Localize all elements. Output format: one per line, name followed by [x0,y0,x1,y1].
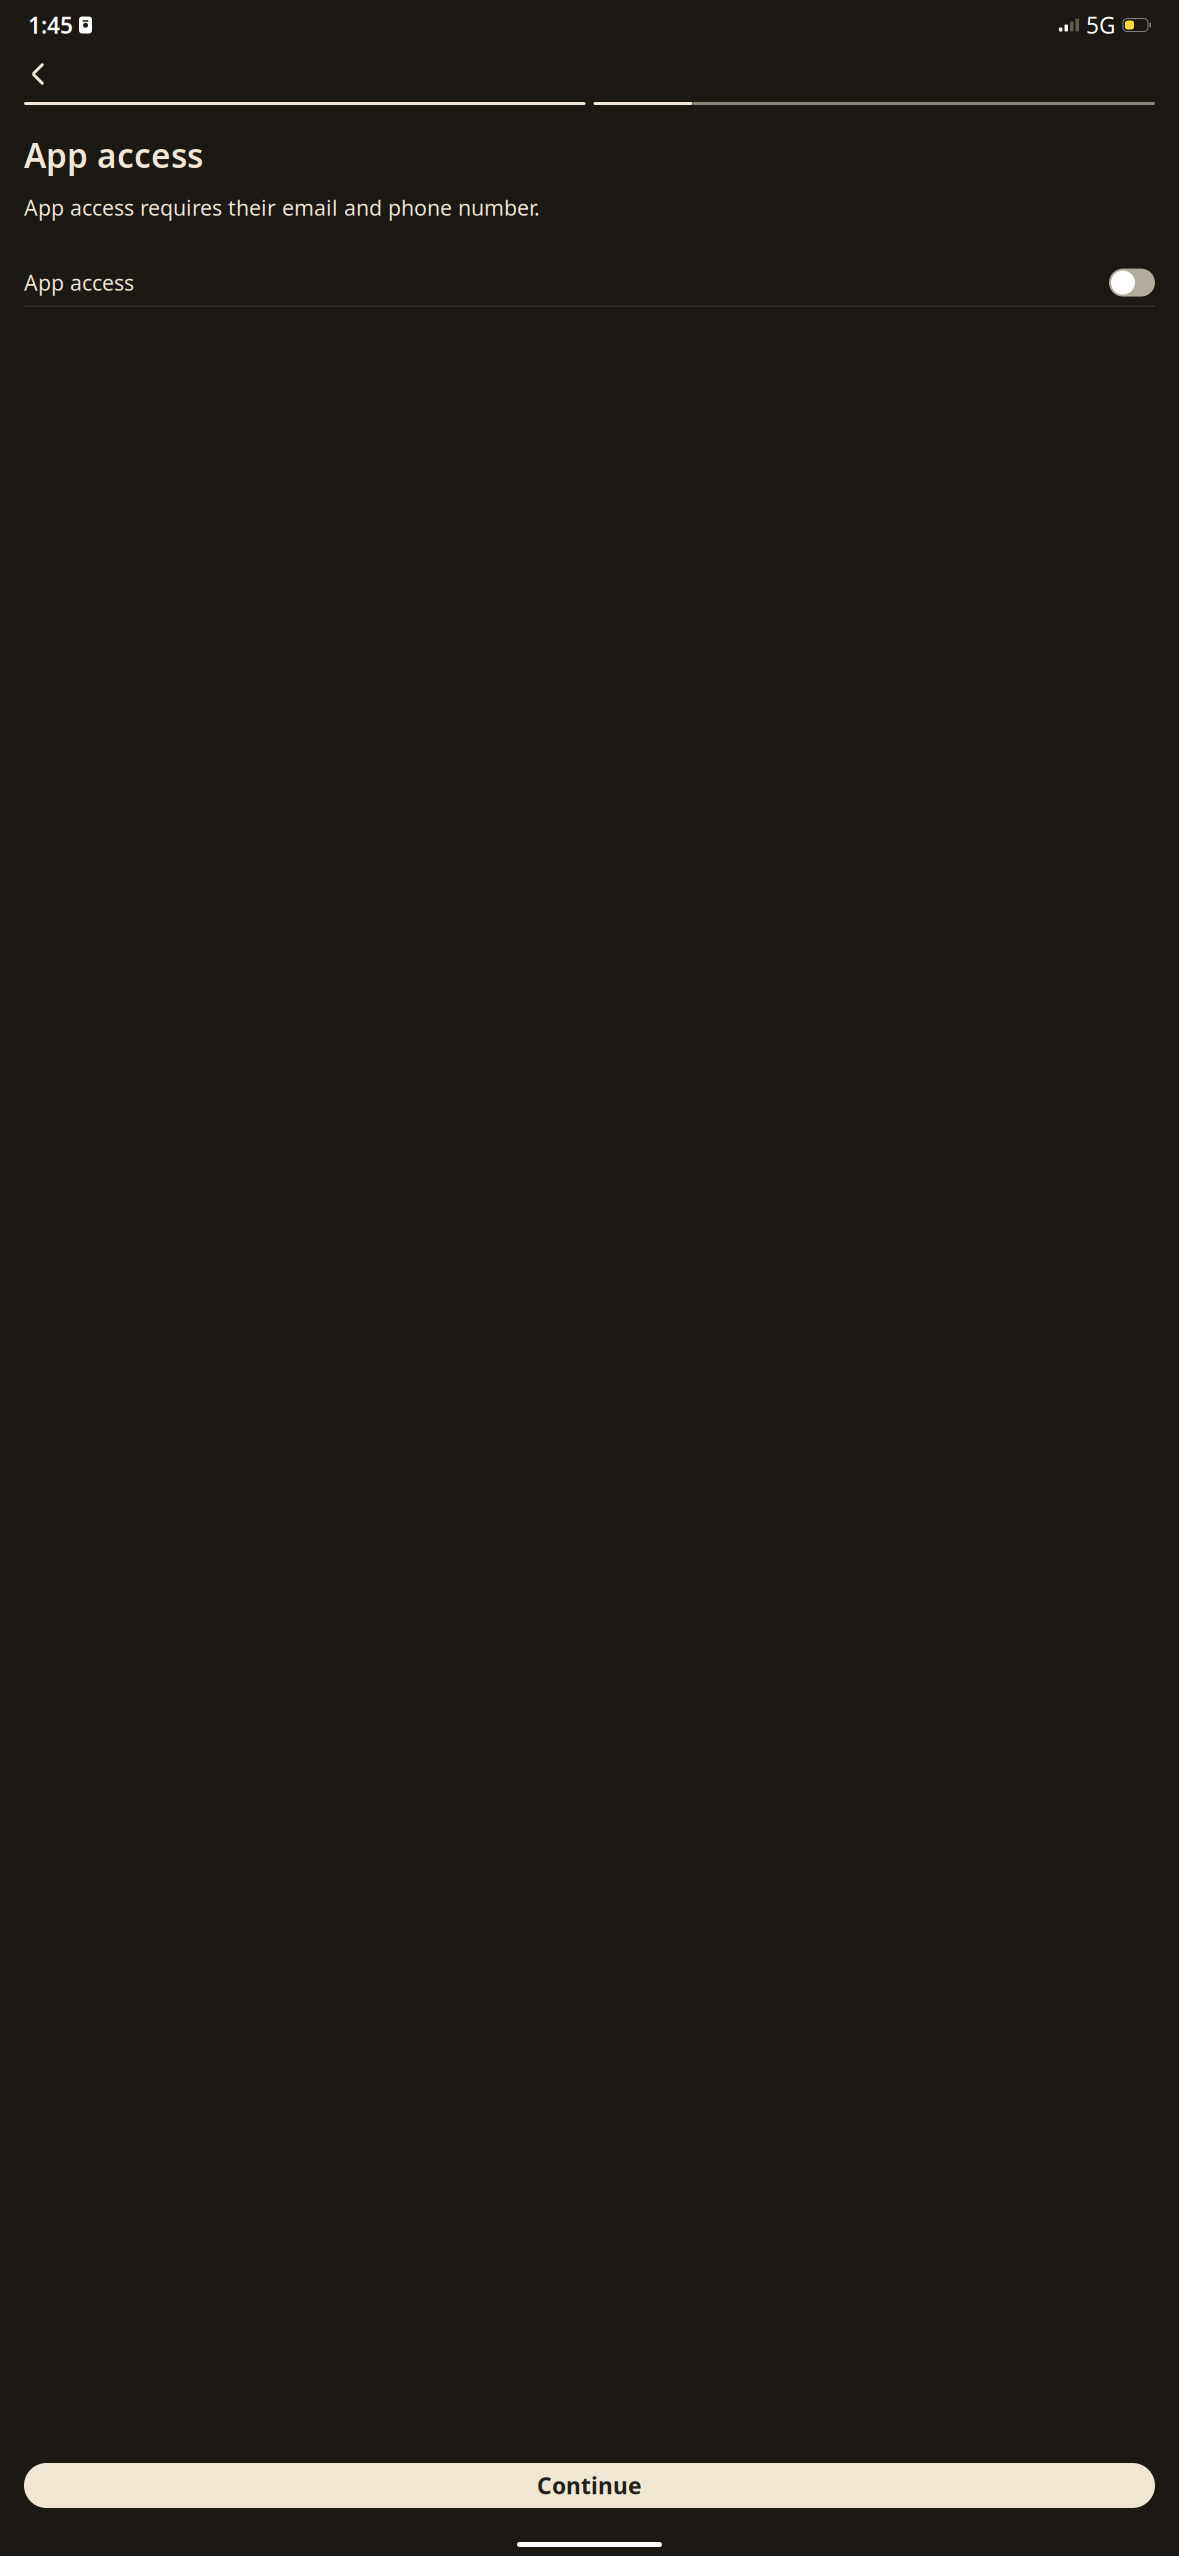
staticText: App access requires their email and phon… [24,193,540,222]
staticText: App access [24,268,134,297]
staticText: 1:45 [28,10,73,40]
button[interactable]: App access [24,260,1155,306]
staticText: 5G [1086,10,1116,40]
button[interactable]: Back [16,52,60,96]
staticText: Continue [537,2470,642,2500]
staticText: App access [24,133,203,177]
button[interactable]: Continue [24,2463,1155,2508]
